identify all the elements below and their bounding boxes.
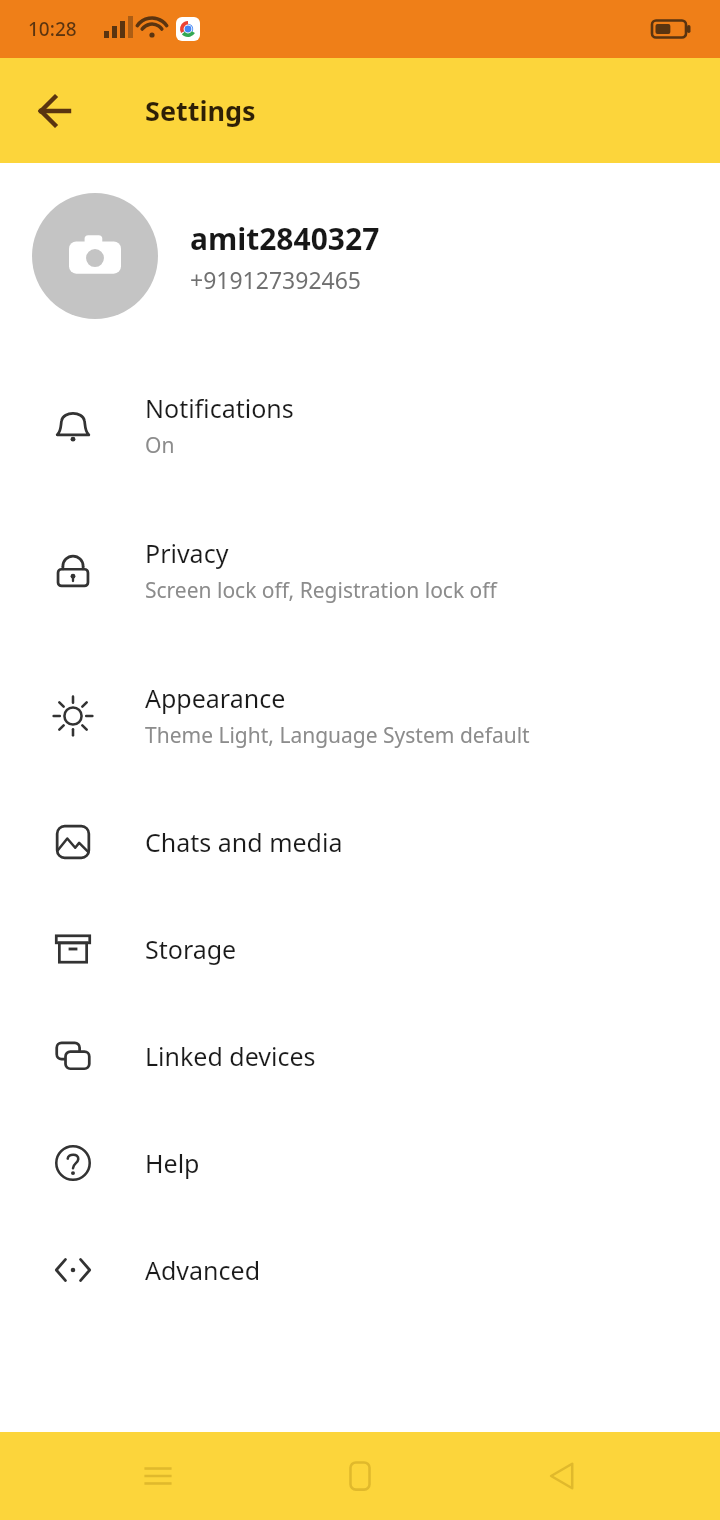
button[interactable]: Home [316,1432,404,1520]
button[interactable]: amit2840327 [0,181,720,331]
button[interactable]: Linked devices [0,1002,720,1109]
button[interactable]: Privacy [0,498,720,643]
staticText: Privacy [145,536,229,570]
staticText: 10:28 [28,16,77,42]
staticText: Chats and media [145,825,343,859]
button[interactable]: Recent apps [114,1432,202,1520]
button[interactable]: Back [518,1432,606,1520]
button[interactable]: Notifications [0,353,720,498]
staticText: Settings [145,92,256,129]
staticText: On [145,431,175,460]
button[interactable]: Help [0,1109,720,1216]
button[interactable]: Chats and media [0,788,720,895]
staticText: Theme Light, Language System default [145,721,530,750]
staticText: Notifications [145,391,294,425]
staticText: +919127392465 [190,264,362,295]
staticText: amit2840327 [190,218,380,259]
button[interactable]: Back [22,79,86,143]
staticText: Advanced [145,1253,261,1287]
button[interactable]: Appearance [0,643,720,788]
staticText: Appearance [145,681,286,715]
staticText: Linked devices [145,1039,316,1073]
button[interactable]: Storage [0,895,720,1002]
staticText: Screen lock off, Registration lock off [145,576,497,605]
button[interactable]: Advanced [0,1216,720,1323]
staticText: Storage [145,932,237,966]
staticText: Help [145,1146,200,1180]
